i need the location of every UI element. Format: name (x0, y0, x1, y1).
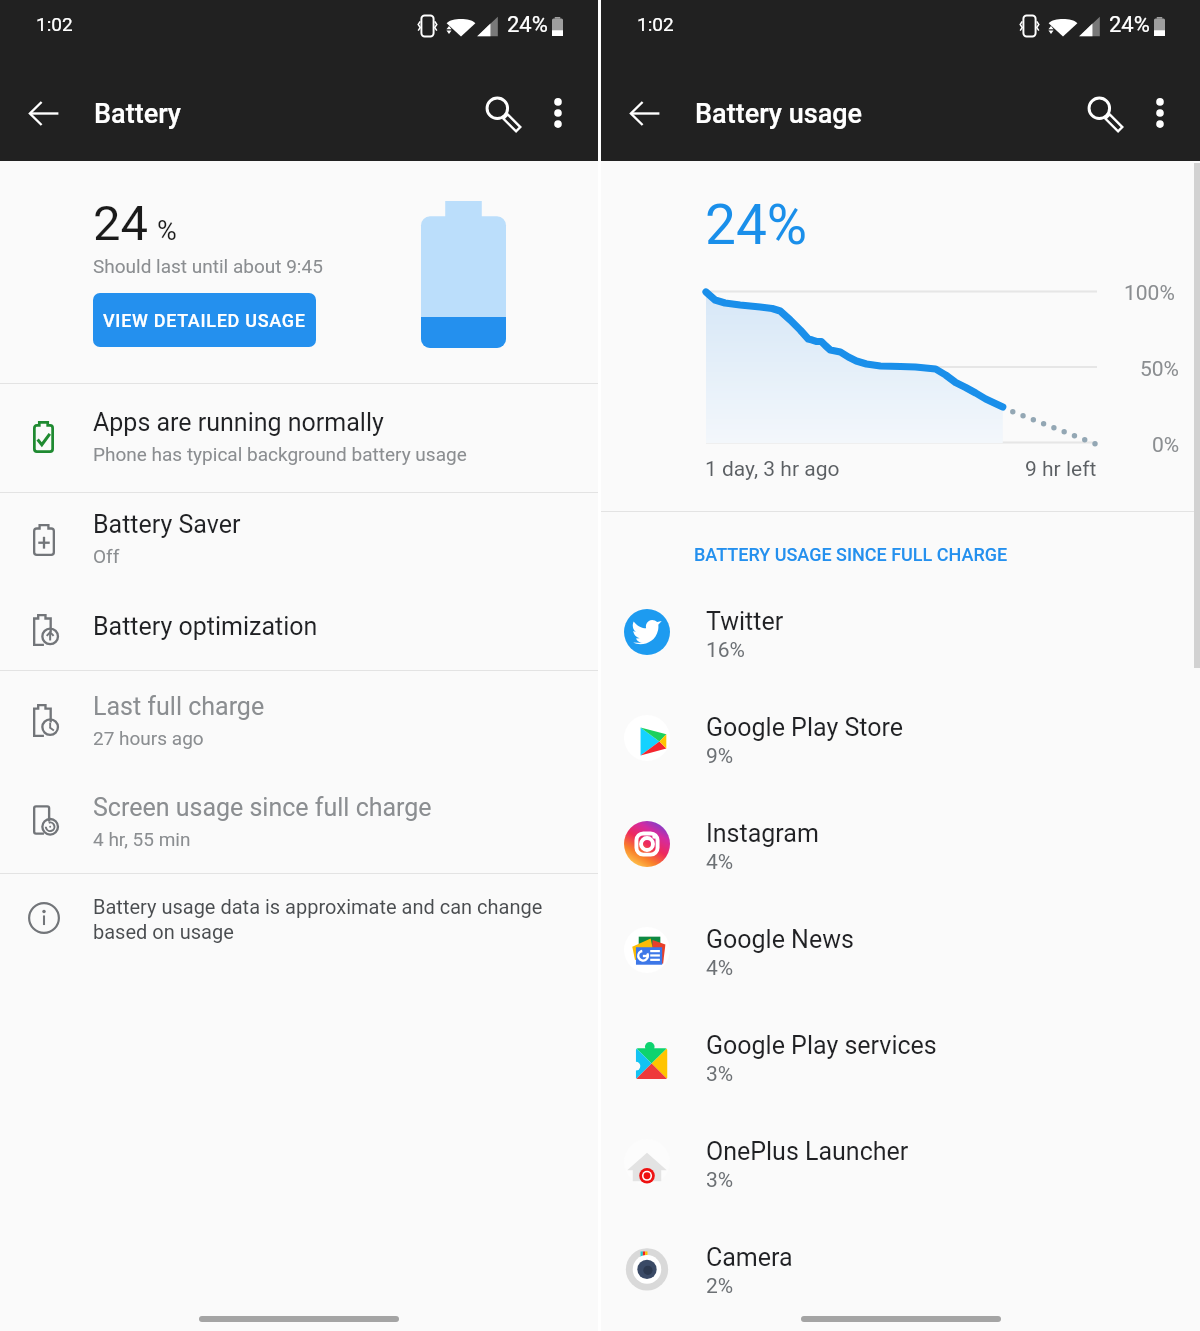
staticText: 9% (706, 744, 734, 769)
staticText: Battery (94, 98, 182, 130)
button[interactable]: OnePlus Launcher (601, 1125, 1200, 1231)
button[interactable]: Battery optimization (0, 593, 598, 670)
staticText: Apps are running normally (93, 408, 384, 437)
staticText: Battery usage data is approximate and ca… (93, 895, 563, 944)
button[interactable]: More options (530, 85, 586, 141)
staticText: Battery usage (695, 98, 863, 130)
button[interactable]: Instagram (601, 807, 1200, 913)
staticText: OnePlus Launcher (706, 1137, 909, 1166)
staticText: 100% (1124, 281, 1175, 306)
staticText: Google Play Store (706, 713, 903, 742)
staticText: 1:02 (36, 13, 73, 35)
staticText: Battery optimization (93, 612, 318, 641)
button[interactable]: Last full charge (0, 671, 598, 772)
button[interactable]: VIEW DETAILED USAGE (93, 293, 316, 347)
staticText: 4 hr, 55 min (93, 828, 191, 850)
staticText: Phone has typical background battery usa… (93, 443, 467, 465)
staticText: BATTERY USAGE SINCE FULL CHARGE (694, 544, 1008, 565)
staticText: Twitter (706, 607, 784, 636)
staticText: 16% (706, 638, 745, 663)
button[interactable]: Camera (601, 1231, 1200, 1331)
staticText: 1:02 (637, 13, 674, 35)
staticText: Google Play services (706, 1031, 937, 1060)
staticText: 4% (706, 850, 734, 875)
staticText: 2% (706, 1274, 734, 1299)
button[interactable]: Screen usage since full charge (0, 772, 598, 873)
staticText: 3% (706, 1062, 734, 1087)
button[interactable]: Apps are running normally (0, 384, 598, 492)
staticText: Should last until about 9:45 (93, 255, 323, 277)
staticText: 1 day, 3 hr ago (705, 457, 840, 482)
staticText: 3% (706, 1168, 734, 1193)
staticText: Instagram (706, 819, 819, 848)
staticText: Screen usage since full charge (93, 793, 432, 822)
staticText: % (157, 215, 177, 247)
staticText: Off (93, 545, 120, 567)
button[interactable]: Google Play services (601, 1019, 1200, 1125)
button[interactable]: Search (1076, 85, 1132, 141)
button[interactable]: Google News (601, 913, 1200, 1019)
staticText: Camera (706, 1243, 793, 1272)
button[interactable]: Navigate up (617, 85, 673, 141)
staticText: 24% (705, 193, 808, 257)
staticText: 9 hr left (1025, 457, 1097, 482)
staticText: 24 (93, 195, 149, 252)
staticText: 4% (706, 956, 734, 981)
button[interactable]: Battery Saver (0, 493, 598, 593)
button[interactable]: Twitter (601, 595, 1200, 701)
staticText: 27 hours ago (93, 727, 204, 749)
staticText: 24% (1109, 12, 1150, 38)
button[interactable]: Navigate up (16, 85, 72, 141)
staticText: 0% (1152, 433, 1180, 458)
staticText: VIEW DETAILED USAGE (103, 310, 306, 331)
button[interactable]: Google Play Store (601, 701, 1200, 807)
button[interactable]: More options (1132, 85, 1188, 141)
staticText: Google News (706, 925, 854, 954)
staticText: 24% (507, 12, 548, 38)
staticText: 50% (1140, 357, 1179, 382)
staticText: Last full charge (93, 692, 265, 721)
staticText: Battery Saver (93, 510, 241, 539)
button[interactable]: Search (474, 85, 530, 141)
